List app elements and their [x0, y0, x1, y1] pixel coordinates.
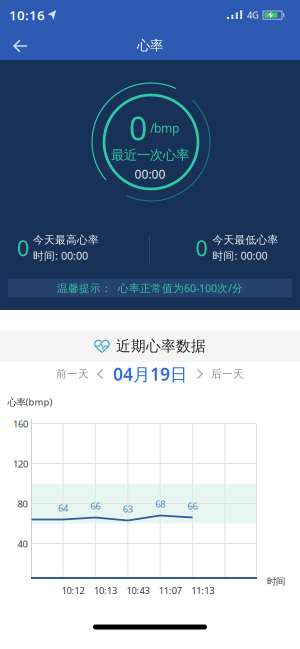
- staticText: 63: [123, 503, 133, 515]
- staticText: 后一天: [211, 367, 244, 380]
- staticText: 今天最低心率: [212, 233, 278, 246]
- staticText: /bmp: [150, 120, 179, 136]
- staticText: 时间: [267, 576, 285, 587]
- staticText: 今天最高心率: [33, 233, 99, 246]
- button[interactable]: Back: [0, 30, 40, 60]
- staticText: 4G: [247, 9, 259, 21]
- staticText: 心率: [137, 37, 163, 54]
- staticText: 80: [17, 498, 27, 510]
- staticText: 0: [17, 234, 29, 262]
- staticText: 10:13: [94, 584, 117, 597]
- staticText: 160: [13, 418, 28, 430]
- staticText: 0: [195, 234, 207, 262]
- staticText: 近期心率数据: [116, 337, 206, 355]
- staticText: 11:13: [191, 584, 214, 597]
- button[interactable]: 后一天: [197, 367, 244, 380]
- staticText: 10:12: [61, 584, 84, 597]
- button[interactable]: 04月19日: [113, 362, 187, 385]
- staticText: 前一天: [56, 367, 89, 380]
- button[interactable]: 前一天: [56, 367, 103, 380]
- staticText: 10:43: [126, 584, 149, 597]
- staticText: 0: [129, 107, 147, 149]
- staticText: 64: [58, 502, 68, 514]
- staticText: 时间: 00:00: [33, 248, 88, 263]
- staticText: 04月19日: [113, 362, 187, 385]
- staticText: 68: [155, 498, 165, 510]
- staticText: 00:00: [134, 166, 165, 182]
- staticText: 时间: 00:00: [212, 248, 267, 263]
- staticText: 心率(bmp): [7, 396, 52, 408]
- staticText: 66: [188, 500, 198, 512]
- staticText: 10:16: [9, 6, 45, 24]
- staticText: 120: [13, 458, 28, 470]
- staticText: 温馨提示： 心率正常值为60-100次/分: [57, 281, 243, 295]
- staticText: 最近一次心率: [111, 147, 189, 163]
- staticText: 66: [90, 500, 100, 512]
- staticText: 11:07: [159, 584, 182, 597]
- staticText: 40: [17, 538, 27, 550]
